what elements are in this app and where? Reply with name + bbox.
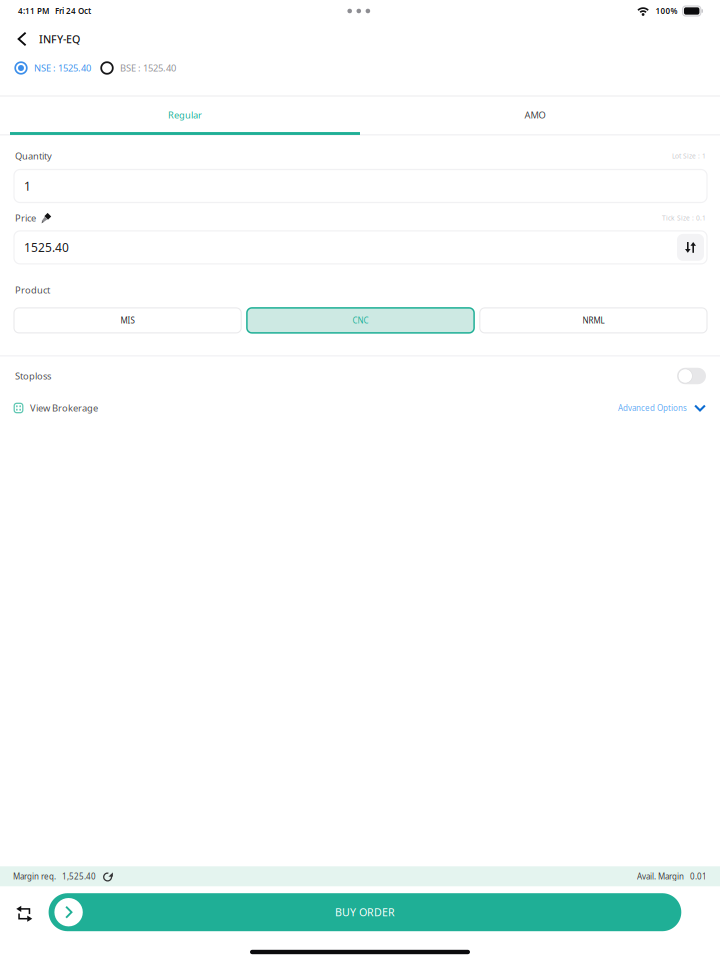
button[interactable]: AMO <box>360 95 710 135</box>
staticText: AMO <box>524 109 545 121</box>
staticText: NRML <box>582 315 604 326</box>
button[interactable]: Advanced Options <box>618 396 706 420</box>
staticText: Regular <box>168 109 202 121</box>
button[interactable]: CNC <box>247 308 474 333</box>
staticText: Margin req. 1,525.40 <box>13 871 96 882</box>
button[interactable]: NSE : 1525.40 <box>15 55 91 81</box>
staticText: Stoploss <box>15 370 51 382</box>
staticText: Product <box>15 284 50 296</box>
staticText: 4:11 PM Fri 24 Oct <box>18 6 91 16</box>
staticText: INFY-EQ <box>39 32 80 46</box>
staticText: Price <box>15 212 36 224</box>
staticText: CNC <box>352 315 368 326</box>
button[interactable]: Switch to sell order <box>9 899 39 929</box>
staticText: Lot Size : 1 <box>672 151 706 160</box>
button[interactable]: BUY ORDER <box>49 893 681 931</box>
button[interactable]: Regular <box>10 95 360 135</box>
staticText: BSE : 1525.40 <box>120 62 176 74</box>
staticText: Avail. Margin 0.01 <box>637 871 707 882</box>
button[interactable]: NRML <box>480 308 707 333</box>
staticText: View Brokerage <box>30 402 98 414</box>
staticText: Tick Size : 0.1 <box>662 214 706 222</box>
staticText: 1525.40 <box>24 239 69 255</box>
button[interactable]: View Brokerage <box>14 396 98 420</box>
staticText: 1 <box>24 178 31 194</box>
staticText: Quantity <box>15 150 52 162</box>
staticText: MIS <box>121 315 135 326</box>
staticText: NSE : 1525.40 <box>34 62 91 74</box>
button[interactable]: MIS <box>14 308 241 333</box>
button[interactable]: Back <box>9 24 35 54</box>
button[interactable]: Stoploss toggle <box>677 368 706 384</box>
staticText: Advanced Options <box>618 403 687 413</box>
button[interactable]: Adjust price <box>677 234 704 261</box>
staticText: 100% <box>656 6 678 16</box>
staticText: BUY ORDER <box>335 905 395 919</box>
button[interactable]: Refresh margin <box>102 870 113 882</box>
button[interactable]: BSE : 1525.40 <box>101 55 176 81</box>
